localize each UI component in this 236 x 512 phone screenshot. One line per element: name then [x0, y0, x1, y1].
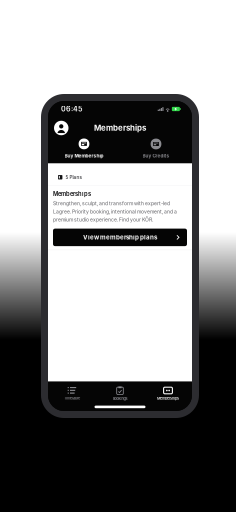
staticText: Memberships	[94, 123, 146, 133]
button[interactable]: View membership plans	[53, 229, 187, 246]
staticText: View membership plans	[83, 234, 157, 241]
staticText: Bookings	[112, 396, 127, 401]
staticText: Buy Credits	[142, 153, 169, 159]
staticText: Timetable	[64, 396, 80, 400]
staticText: Memberships	[157, 396, 179, 401]
button[interactable]: Account	[54, 121, 68, 135]
staticText: 06:45	[61, 105, 82, 113]
button[interactable]: Timetable	[48, 387, 96, 400]
staticText: Memberships	[53, 190, 91, 197]
staticText: Strengthen, sculpt, and transform with e…	[53, 200, 177, 223]
staticText: Buy Membership	[64, 153, 103, 159]
staticText: 5 Plans	[65, 174, 81, 180]
button[interactable]: Buy Membership	[48, 138, 120, 159]
button[interactable]: Buy Credits	[120, 139, 192, 159]
button[interactable]: Bookings	[96, 386, 144, 401]
button[interactable]: Memberships	[144, 387, 192, 401]
